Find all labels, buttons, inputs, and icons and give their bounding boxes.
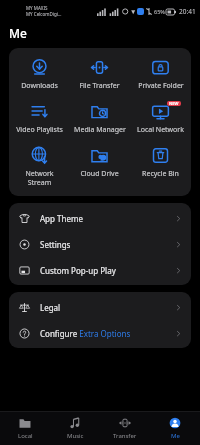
button[interactable]: Custom Pop-up Play [9, 257, 191, 283]
button[interactable]: Video Playlists [9, 99, 69, 137]
other: Local [18, 416, 32, 430]
button[interactable]: Music [50, 412, 100, 440]
staticText: Settings [40, 239, 71, 250]
staticText: Configure Extra Options [40, 328, 131, 339]
staticText: NEW [169, 101, 179, 106]
staticText: Video Playlists [16, 125, 63, 135]
button[interactable]: App Theme [9, 205, 191, 231]
button[interactable]: Legal [9, 294, 191, 320]
button[interactable]: Downloads [9, 55, 69, 93]
button[interactable]: Me [150, 412, 200, 440]
staticText: Private Folder [138, 81, 184, 91]
staticText: App Theme [40, 213, 83, 224]
button[interactable]: Cloud Drive [69, 143, 130, 181]
button[interactable]: Configure Extra Options [9, 320, 191, 346]
button[interactable]: NEW [130, 99, 191, 137]
staticText: Custom Pop-up Play [40, 265, 116, 276]
staticText: Recycle Bin [142, 169, 179, 179]
staticText: Cloud Drive [80, 169, 119, 179]
staticText: File Transfer [79, 81, 120, 91]
staticText: Network Stream [25, 169, 54, 187]
button[interactable]: Recycle Bin [130, 143, 191, 181]
other: Me [168, 416, 182, 430]
staticText: MY CelcomDigi... [26, 11, 62, 17]
button[interactable]: Network Stream [9, 143, 69, 189]
staticText: 20:41 [179, 7, 196, 16]
staticText: Media Manager [74, 125, 126, 135]
staticText: MY MAXIS [26, 5, 48, 11]
staticText: Transfer [113, 432, 137, 440]
other: Music [68, 416, 82, 430]
other: Transfer [118, 416, 132, 430]
staticText: Music [67, 432, 84, 440]
staticText: Me [171, 432, 180, 440]
button[interactable]: Local [0, 412, 50, 440]
staticText: Legal [40, 302, 61, 313]
button[interactable]: File Transfer [69, 55, 130, 93]
staticText: 65% [154, 8, 165, 15]
staticText: Local [18, 432, 33, 440]
staticText: Me [9, 25, 27, 41]
button[interactable]: Settings [9, 231, 191, 257]
button[interactable]: Private Folder [130, 55, 191, 93]
staticText: Downloads [21, 81, 58, 91]
button[interactable]: Media Manager [69, 99, 130, 137]
button[interactable]: Transfer [100, 412, 150, 440]
staticText: Local Network [137, 125, 184, 135]
